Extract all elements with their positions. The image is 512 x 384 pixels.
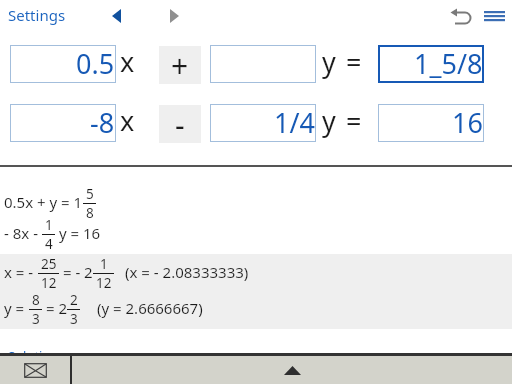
staticText: 1 <box>45 216 53 234</box>
button[interactable]: Settings <box>8 5 66 25</box>
button[interactable]: -8 <box>10 104 116 142</box>
staticText: 4 <box>45 235 53 250</box>
staticText: 16 <box>452 104 483 141</box>
button[interactable] <box>446 4 472 30</box>
staticText: x = - <box>4 262 38 282</box>
button[interactable] <box>482 6 508 26</box>
staticText: (y = 2.6666667) <box>97 298 203 318</box>
staticText: 3 <box>32 310 40 325</box>
staticText: - <box>175 104 185 142</box>
staticText: 0.5 <box>76 45 115 82</box>
button[interactable] <box>72 356 512 384</box>
staticText: y = 16 <box>55 223 101 243</box>
button[interactable]: 0.5 <box>10 45 116 83</box>
staticText: 0.5x + y = 1 <box>4 192 83 212</box>
button[interactable]: 16 <box>378 104 484 142</box>
staticText: 8 <box>32 291 40 309</box>
staticText: 8 <box>86 204 94 219</box>
staticText: 2 <box>70 291 78 309</box>
staticText: 3 <box>70 310 78 325</box>
staticText: 5 <box>86 185 94 203</box>
staticText: Solution <box>8 347 59 365</box>
staticText: (x = - 2.08333333) <box>125 262 249 282</box>
staticText: = <box>346 43 362 80</box>
button[interactable] <box>106 4 130 28</box>
staticText: - 8x - <box>4 223 42 243</box>
staticText: x <box>120 43 135 80</box>
button[interactable] <box>210 45 316 83</box>
staticText: + <box>171 45 189 83</box>
staticText: 12 <box>96 274 112 289</box>
staticText: y = <box>4 298 29 318</box>
staticText: x <box>120 102 135 139</box>
staticText: = 2 <box>42 298 67 318</box>
button[interactable]: + <box>159 46 201 84</box>
button[interactable]: - <box>159 105 201 143</box>
button[interactable] <box>164 4 188 28</box>
staticText: = - 2 <box>59 262 93 282</box>
staticText: y <box>322 102 336 139</box>
staticText: 1 <box>100 255 108 273</box>
staticText: y <box>322 43 336 80</box>
staticText: 1_5/8 <box>414 45 483 82</box>
staticText: 1/4 <box>274 104 315 141</box>
button[interactable]: 1_5/8 <box>378 45 484 83</box>
staticText: -8 <box>90 104 115 141</box>
button[interactable] <box>0 356 70 384</box>
staticText: 12 <box>41 274 57 289</box>
staticText: = <box>346 102 362 139</box>
button[interactable]: 1/4 <box>210 104 316 142</box>
staticText: 25 <box>41 255 57 273</box>
